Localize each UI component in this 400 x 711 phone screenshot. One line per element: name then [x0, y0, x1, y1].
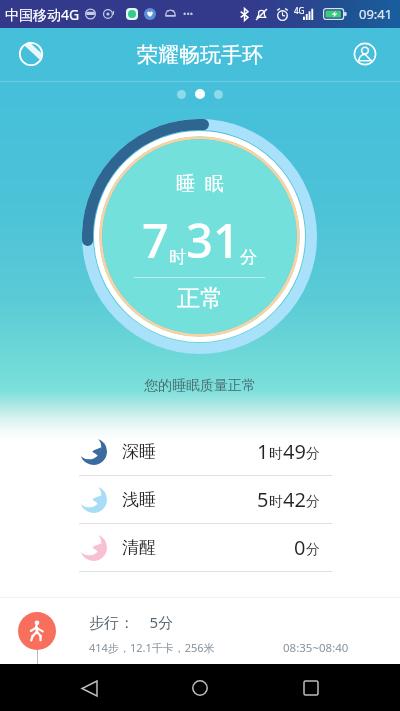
staticText: 清醒: [122, 537, 156, 558]
staticText: 荣耀畅玩手环: [137, 42, 263, 68]
button[interactable]: 深睡: [0, 428, 400, 476]
button[interactable]: 浅睡: [0, 476, 400, 524]
staticText: 31: [186, 208, 240, 272]
staticText: 5: [257, 486, 269, 513]
staticText: 时: [169, 247, 186, 268]
staticText: •••: [183, 7, 194, 19]
staticText: 分: [240, 247, 257, 268]
staticText: 中国移动4G: [5, 5, 80, 24]
button[interactable]: 步行： 5分: [0, 597, 400, 664]
staticText: 您的睡眠质量正常: [0, 377, 400, 395]
staticText: 分: [306, 493, 320, 511]
staticText: 步行： 5分: [89, 612, 174, 632]
staticText: 时: [269, 493, 283, 511]
staticText: 4G: [294, 5, 305, 16]
staticText: 414步，12.1千卡，256米: [89, 640, 215, 655]
staticText: 正常: [177, 284, 223, 313]
button[interactable]: Back: [67, 666, 111, 710]
staticText: 深睡: [122, 441, 156, 462]
staticText: 08:35~08:40: [283, 640, 349, 656]
button[interactable]: Account: [348, 37, 382, 71]
staticText: 分: [306, 445, 320, 463]
staticText: 睡 眠: [176, 170, 224, 196]
staticText: 42: [283, 486, 306, 513]
staticText: 7: [142, 208, 169, 272]
button[interactable]: Recents: [289, 666, 333, 710]
staticText: 1: [257, 438, 269, 465]
staticText: 分: [306, 541, 320, 559]
button[interactable]: 清醒: [0, 524, 400, 572]
button[interactable]: Home: [178, 666, 222, 710]
staticText: 时: [269, 445, 283, 463]
staticText: 49: [283, 438, 306, 465]
button[interactable]: Device: [14, 37, 48, 71]
staticText: 09:41: [359, 5, 393, 23]
staticText: 浅睡: [122, 489, 156, 510]
staticText: 0: [294, 534, 306, 561]
